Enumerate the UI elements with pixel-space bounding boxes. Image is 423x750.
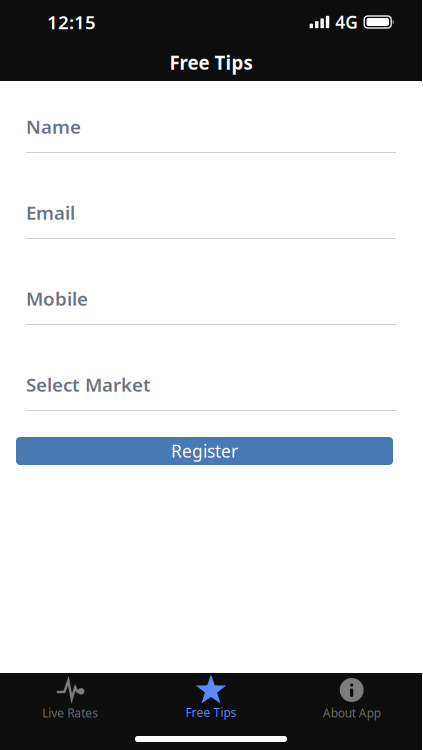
staticText: Register [171,439,238,462]
staticText: Live Rates [42,705,98,721]
staticText: Mobile [26,286,88,311]
button[interactable]: Free Tips [141,677,281,720]
staticText: 12:15 [47,10,96,34]
button[interactable]: Email [26,181,396,239]
staticText: Email [26,200,75,225]
staticText: 4G [335,10,358,33]
staticText: Select Market [26,372,151,397]
staticText: About App [323,705,381,721]
button[interactable]: Select Market [26,353,396,411]
button[interactable]: About App [281,677,422,721]
button[interactable]: Name [26,95,396,153]
staticText: Name [26,114,81,139]
button[interactable]: Register [16,437,393,465]
staticText: Free Tips [185,704,236,720]
staticText: Free Tips [169,50,252,75]
button[interactable]: Live Rates [0,677,141,721]
button[interactable]: Mobile [26,267,396,325]
